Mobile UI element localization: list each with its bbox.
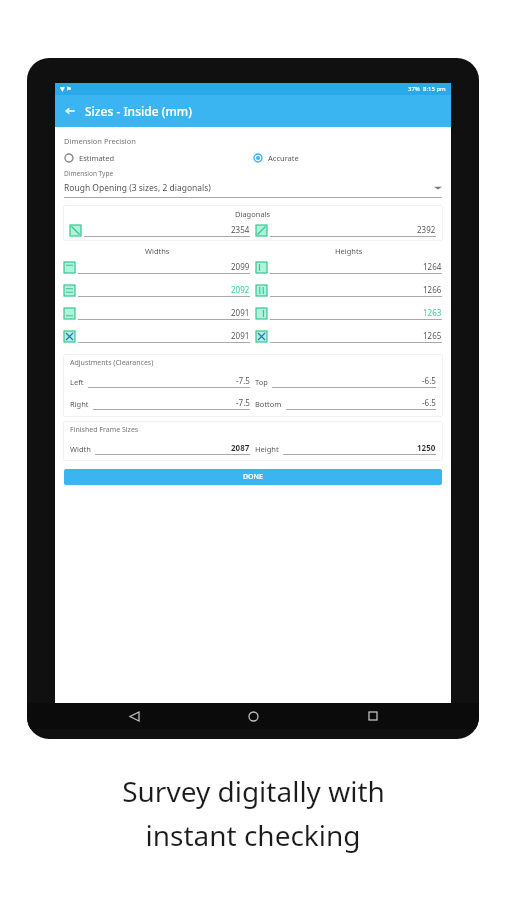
- button[interactable]: Height measurement: [256, 284, 442, 297]
- button[interactable]: Diagonal measurement: [70, 224, 250, 237]
- button[interactable]: Home: [240, 703, 266, 729]
- button[interactable]: Width measurement: [64, 261, 250, 274]
- staticText: Rough Opening (3 sizes, 2 diagonals): [64, 182, 211, 194]
- button[interactable]: Height measurement: [256, 261, 442, 274]
- other: Height measurement: [256, 285, 267, 296]
- staticText: -6.5: [422, 375, 436, 386]
- staticText: Width: [70, 444, 91, 454]
- button[interactable]: Bottom: [255, 397, 436, 410]
- button[interactable]: Rough Opening (3 sizes, 2 diagonals): [64, 182, 442, 194]
- button[interactable]: Left: [70, 375, 250, 388]
- staticText: 2392: [417, 224, 436, 235]
- staticText: 2087: [231, 442, 250, 453]
- other: Width measurement: [64, 331, 75, 342]
- button[interactable]: Accurate: [253, 153, 442, 163]
- staticText: Top: [255, 377, 268, 387]
- other: Height measurement: [256, 262, 267, 273]
- button[interactable]: Width measurement: [64, 284, 250, 297]
- staticText: Dimension Type: [64, 169, 114, 178]
- button[interactable]: Back: [121, 703, 147, 729]
- staticText: ▼ ⚑: [60, 85, 72, 93]
- staticText: Right: [70, 399, 89, 409]
- other: Width measurement: [64, 285, 75, 296]
- button[interactable]: Right: [70, 397, 250, 410]
- staticText: instant checking: [145, 816, 361, 854]
- staticText: -6.5: [422, 397, 436, 408]
- button[interactable]: DONE: [64, 469, 442, 485]
- button[interactable]: Width measurement: [64, 307, 250, 320]
- staticText: Accurate: [268, 153, 299, 163]
- staticText: Heights: [335, 246, 363, 256]
- button[interactable]: Width measurement: [64, 330, 250, 343]
- button[interactable]: Width: [70, 442, 250, 455]
- staticText: Dimension Precision: [64, 136, 136, 146]
- other: Height measurement: [256, 331, 267, 342]
- staticText: -7.5: [236, 375, 250, 386]
- staticText: Diagonals: [235, 209, 271, 219]
- button[interactable]: Estimated: [64, 153, 253, 163]
- staticText: Adjustments (Clearances): [70, 358, 154, 368]
- other: Diagonal measurement: [256, 225, 267, 236]
- other: Diagonal measurement: [70, 225, 81, 236]
- other: Width measurement: [64, 262, 75, 273]
- staticText: Widths: [145, 246, 170, 256]
- staticText: DONE: [243, 472, 263, 482]
- button[interactable]: Top: [255, 375, 436, 388]
- staticText: Left: [70, 377, 84, 387]
- staticText: 2354: [231, 224, 250, 235]
- button[interactable]: Height measurement: [256, 307, 442, 320]
- staticText: 2099: [231, 261, 250, 272]
- staticText: 1266: [423, 284, 442, 295]
- button[interactable]: Recent apps: [360, 703, 386, 729]
- staticText: 1250: [417, 442, 436, 453]
- button[interactable]: Diagonal measurement: [256, 224, 436, 237]
- staticText: Bottom: [255, 399, 282, 409]
- staticText: Height: [255, 444, 279, 454]
- staticText: Sizes - Inside (mm): [85, 103, 192, 119]
- staticText: Estimated: [79, 153, 115, 163]
- staticText: 1264: [423, 261, 442, 272]
- staticText: 2091: [231, 307, 250, 318]
- other: Width measurement: [64, 308, 75, 319]
- staticText: Finished Frame Sizes: [70, 425, 139, 435]
- staticText: -7.5: [236, 397, 250, 408]
- staticText: 2091: [231, 330, 250, 341]
- staticText: 2092: [231, 284, 250, 295]
- button[interactable]: Height measurement: [256, 330, 442, 343]
- button[interactable]: Back: [55, 96, 85, 126]
- staticText: Survey digitally with: [122, 772, 385, 810]
- staticText: 1263: [423, 307, 442, 318]
- button[interactable]: Height: [255, 442, 436, 455]
- other: Height measurement: [256, 308, 267, 319]
- staticText: 37% 8:15 pm: [408, 85, 446, 93]
- staticText: 1265: [423, 330, 442, 341]
